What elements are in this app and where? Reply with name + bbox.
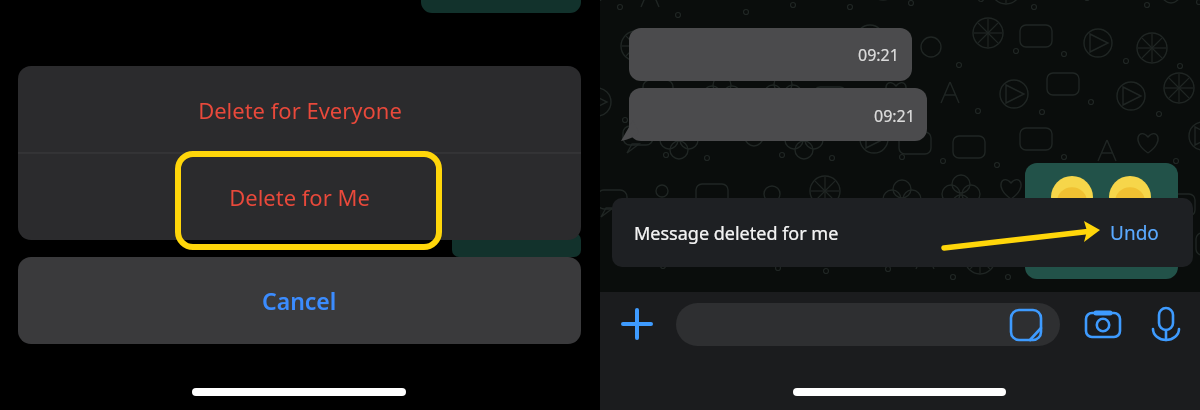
staticText: 09:21: [874, 105, 915, 127]
button[interactable]: Message input: [676, 303, 1060, 346]
button[interactable]: Camera: [1084, 308, 1122, 342]
staticText: Delete for Everyone: [198, 95, 402, 125]
button[interactable]: Undo: [1098, 218, 1170, 248]
button[interactable]: Attach: [622, 309, 653, 340]
button[interactable]: Cancel: [18, 257, 581, 344]
staticText: Undo: [1110, 220, 1159, 246]
staticText: Delete for Me: [229, 182, 370, 212]
staticText: 09:21: [858, 44, 899, 66]
staticText: Cancel: [262, 285, 337, 316]
staticText: Message deleted for me: [634, 221, 839, 246]
button[interactable]: Delete for Everyone: [18, 66, 581, 153]
button[interactable]: Stickers: [1009, 308, 1043, 342]
button[interactable]: Voice message: [1152, 306, 1182, 344]
button[interactable]: Delete for Me: [18, 153, 581, 240]
